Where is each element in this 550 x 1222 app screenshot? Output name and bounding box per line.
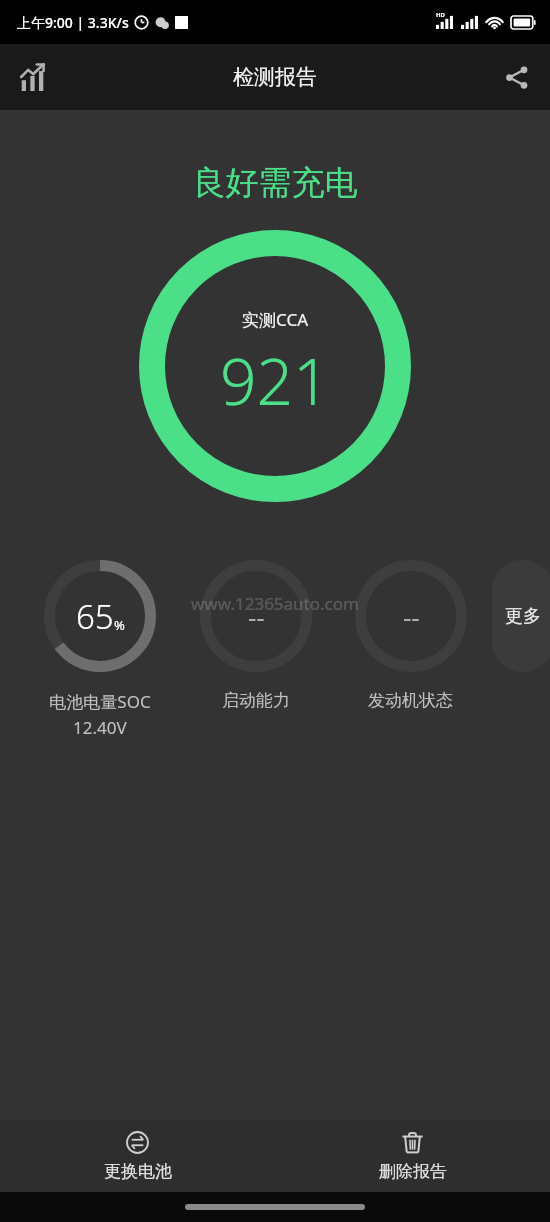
button[interactable]: 删除报告: [275, 1120, 550, 1192]
button[interactable]: 更多: [492, 560, 550, 672]
staticText: 良好需充电: [0, 162, 550, 204]
staticText: 发动机状态: [368, 690, 453, 711]
staticText: 启动能力: [222, 690, 290, 711]
button[interactable]: --: [178, 560, 333, 711]
staticText: 删除报告: [379, 1161, 447, 1182]
staticText: 实测CCA: [242, 308, 309, 331]
staticText: %: [114, 616, 125, 634]
staticText: HD: [436, 11, 445, 19]
button[interactable]: 65: [22, 560, 178, 739]
staticText: --: [403, 599, 420, 634]
button[interactable]: 统计趋势: [8, 53, 56, 101]
staticText: www.12365auto.com: [191, 592, 359, 615]
button[interactable]: --: [333, 560, 488, 711]
staticText: 65: [76, 594, 114, 639]
staticText: 921: [220, 337, 330, 424]
staticText: 上午9:00 | 3.3K/s: [17, 13, 129, 32]
button[interactable]: 分享: [492, 53, 540, 101]
button[interactable]: 更换电池: [0, 1120, 275, 1192]
staticText: --: [248, 599, 265, 634]
staticText: 更多: [505, 605, 541, 628]
staticText: 检测报告: [233, 64, 317, 90]
staticText: 更换电池: [104, 1161, 172, 1182]
staticText: 电池电量SOC: [49, 690, 151, 713]
staticText: 12.40V: [73, 716, 127, 739]
